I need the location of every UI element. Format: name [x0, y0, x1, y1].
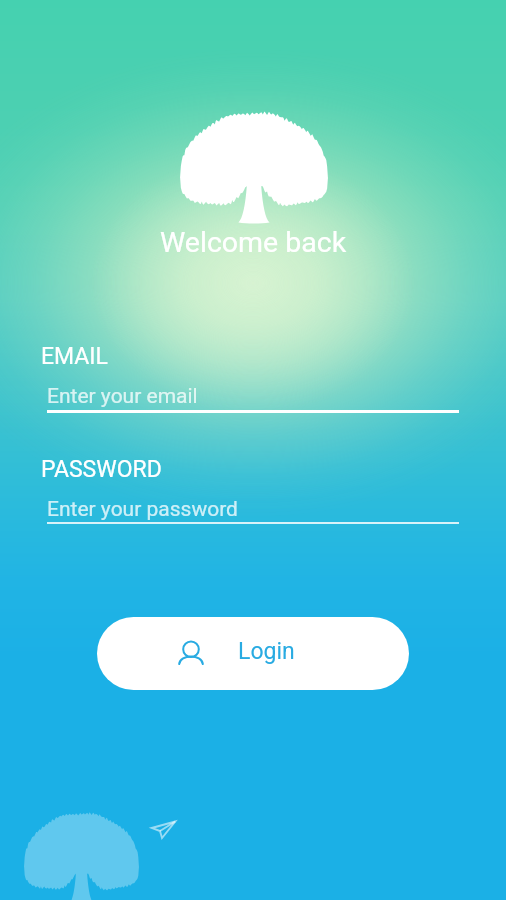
button[interactable]: Login	[97, 617, 409, 690]
button[interactable]: Enter your email	[47, 384, 459, 424]
staticText: Enter your email	[47, 384, 198, 409]
staticText: Login	[238, 638, 295, 665]
staticText: Enter your password	[47, 497, 238, 522]
staticText: EMAIL	[41, 343, 109, 370]
button[interactable]: Enter your password	[47, 497, 459, 537]
button[interactable]: Send	[151, 820, 176, 839]
staticText: Welcome back	[160, 226, 347, 259]
staticText: PASSWORD	[41, 456, 162, 483]
